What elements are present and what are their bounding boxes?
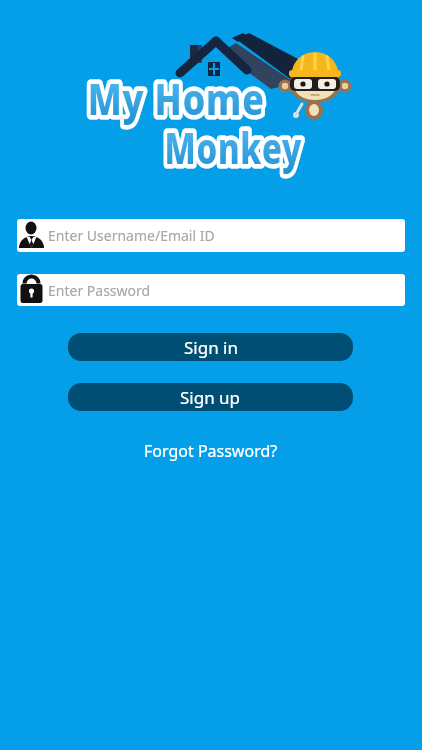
button[interactable]: Sign up (68, 383, 353, 411)
button[interactable]: Enter Password (17, 274, 405, 306)
staticText: Sign up (180, 386, 241, 409)
staticText: My Home (88, 70, 265, 127)
staticText: Sign in (184, 336, 238, 359)
button[interactable]: Sign in (68, 333, 353, 361)
staticText: Enter Password (48, 281, 151, 300)
staticText: Enter Username/Email ID (48, 226, 215, 245)
staticText: My Home (88, 70, 265, 127)
staticText: Monkey (164, 119, 303, 176)
staticText: Monkey (164, 119, 303, 176)
button[interactable]: Enter Username/Email ID (17, 219, 405, 252)
button[interactable]: Forgot Password? (144, 440, 278, 462)
